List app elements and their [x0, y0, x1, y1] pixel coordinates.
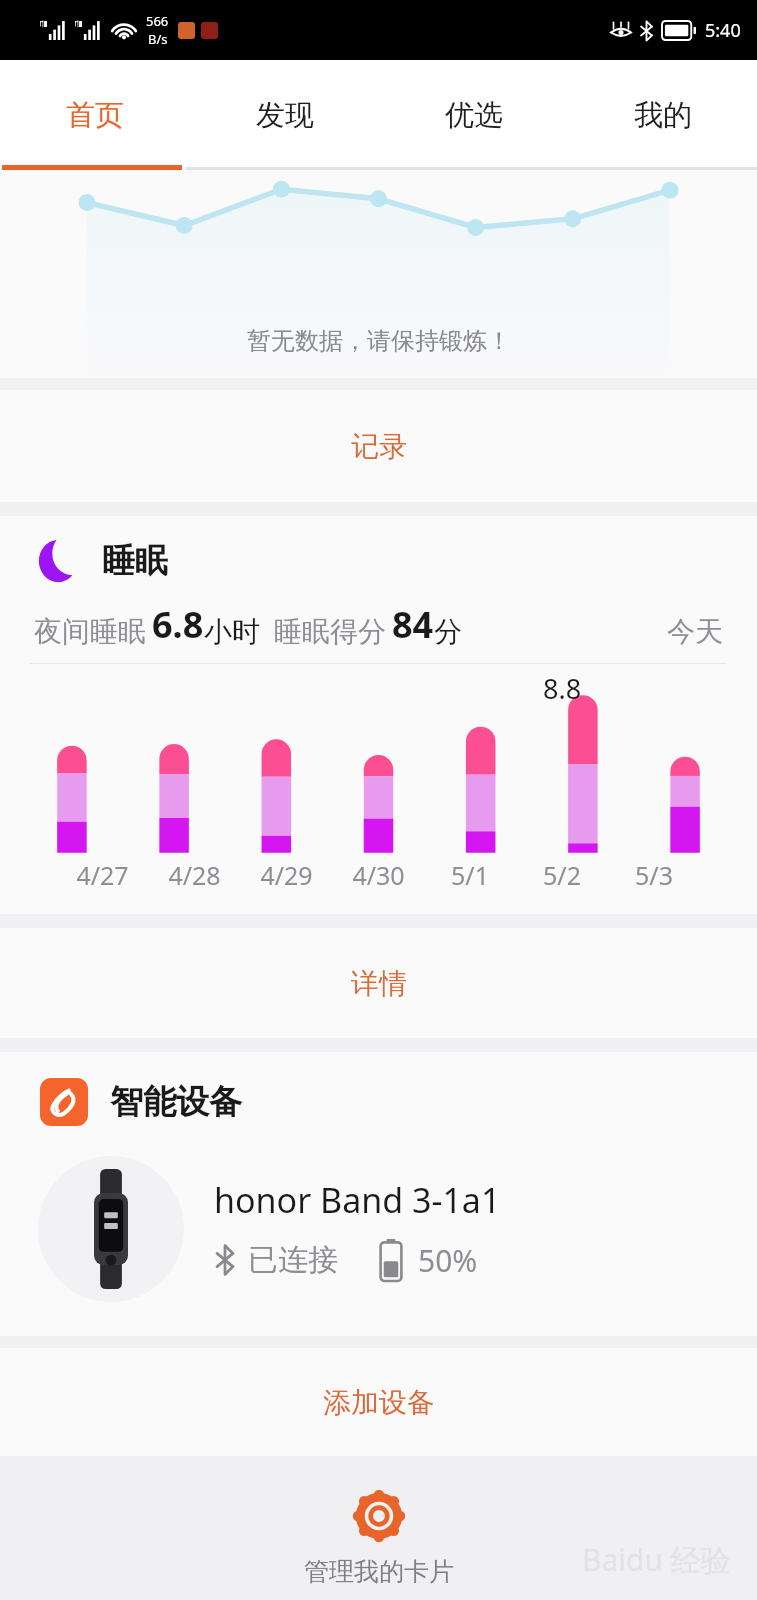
staticText: 5/3: [635, 858, 673, 892]
staticText: 50%: [418, 1240, 478, 1281]
button[interactable]: 添加设备: [0, 1348, 757, 1456]
staticText: 今天: [667, 614, 723, 649]
staticText: Baidu 经验: [582, 1539, 731, 1580]
staticText: 5/2: [543, 858, 581, 892]
button[interactable]: 发现: [190, 60, 379, 170]
staticText: 记录: [351, 429, 407, 464]
staticText: 暂无数据，请保持锻炼！: [247, 326, 511, 356]
staticText: 睡眠得分: [274, 614, 386, 649]
staticText: 84: [392, 600, 434, 649]
staticText: 4/27: [76, 858, 129, 892]
staticText: 5:40: [705, 18, 741, 43]
staticText: 发现: [256, 97, 314, 134]
staticText: 首页: [66, 97, 124, 134]
staticText: 分: [434, 614, 462, 649]
staticText: B/s: [148, 30, 168, 48]
staticText: 添加设备: [323, 1385, 435, 1420]
button[interactable]: honor Band 3-1a1: [38, 1156, 757, 1302]
staticText: 夜间睡眠: [34, 614, 146, 649]
staticText: 我的: [634, 97, 692, 134]
staticText: 睡眠: [102, 540, 168, 582]
staticText: 8.8: [543, 670, 582, 707]
staticText: 优选: [445, 97, 503, 134]
staticText: 4/28: [168, 858, 221, 892]
staticText: 详情: [351, 966, 407, 1001]
button[interactable]: 记录: [0, 390, 757, 502]
staticText: 智能设备: [110, 1081, 242, 1123]
button[interactable]: 首页: [0, 60, 190, 170]
staticText: 566: [146, 12, 169, 30]
staticText: 已连接: [248, 1241, 338, 1279]
button[interactable]: 我的: [568, 60, 757, 170]
staticText: 6.8: [152, 600, 204, 649]
staticText: 5/1: [451, 858, 489, 892]
staticText: 小时: [204, 614, 260, 649]
button[interactable]: 详情: [0, 928, 757, 1038]
staticText: 4/29: [260, 858, 313, 892]
staticText: 管理我的卡片: [304, 1556, 454, 1587]
staticText: honor Band 3-1a1: [214, 1177, 501, 1223]
button[interactable]: 管理我的卡片: [304, 1490, 454, 1587]
staticText: 4/30: [352, 858, 405, 892]
button[interactable]: 优选: [379, 60, 568, 170]
